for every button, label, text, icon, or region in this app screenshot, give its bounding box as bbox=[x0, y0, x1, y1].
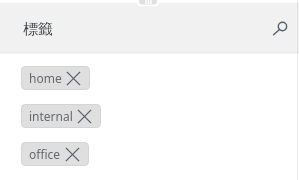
staticText: internal bbox=[29, 108, 73, 124]
button[interactable]: home bbox=[21, 66, 90, 90]
staticText: office bbox=[29, 146, 61, 162]
button[interactable]: office bbox=[21, 142, 89, 166]
button[interactable]: Search bbox=[261, 10, 299, 48]
staticText: home bbox=[29, 70, 62, 86]
button[interactable]: internal bbox=[21, 104, 101, 128]
staticText: 標籤 bbox=[23, 20, 53, 39]
